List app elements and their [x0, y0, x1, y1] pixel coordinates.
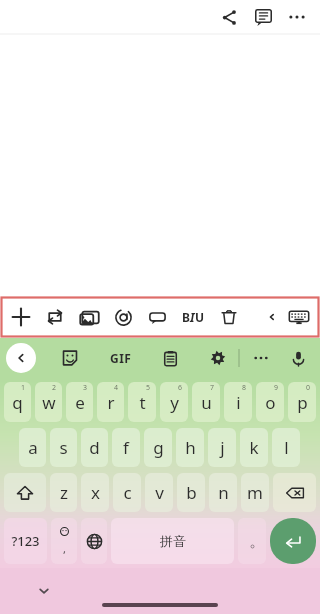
button[interactable]: t	[128, 382, 156, 422]
button[interactable]: v	[145, 473, 173, 512]
button[interactable]: Shift	[4, 473, 46, 512]
button[interactable]: q	[4, 382, 31, 422]
button[interactable]: Settings	[202, 342, 234, 374]
staticText: m	[247, 481, 263, 504]
button[interactable]: w	[35, 382, 62, 422]
button[interactable]: l	[272, 428, 300, 467]
button[interactable]: h	[176, 428, 204, 467]
button[interactable]: a	[19, 428, 46, 467]
button[interactable]: z	[50, 473, 77, 512]
staticText: 9	[274, 383, 279, 393]
staticText: i	[236, 391, 241, 414]
button[interactable]: d	[81, 428, 108, 467]
button[interactable]: Share	[212, 0, 246, 34]
button[interactable]: ?123	[4, 518, 47, 564]
button[interactable]: Previous	[262, 300, 282, 334]
button[interactable]: x	[81, 473, 109, 512]
button[interactable]: i	[224, 382, 252, 422]
staticText: y	[170, 391, 179, 414]
staticText: GIF	[110, 350, 132, 366]
staticText: I	[190, 309, 195, 325]
staticText: 8	[242, 383, 247, 393]
button[interactable]: Change language	[81, 518, 107, 564]
button[interactable]: Voice input	[282, 342, 314, 374]
staticText: c	[123, 481, 132, 504]
staticText: d	[89, 436, 100, 459]
button[interactable]: B	[174, 300, 212, 334]
button[interactable]: 拼音	[111, 518, 234, 564]
staticText: 5	[146, 383, 151, 393]
staticText: z	[60, 481, 68, 504]
button[interactable]: Mention	[106, 300, 140, 334]
staticText: o	[265, 391, 276, 414]
staticText: f	[123, 436, 129, 459]
staticText: s	[59, 436, 68, 459]
button[interactable]: y	[160, 382, 188, 422]
staticText: 3	[83, 383, 88, 393]
staticText: U	[195, 309, 205, 325]
staticText: l	[284, 436, 289, 459]
staticText: r	[107, 391, 115, 414]
staticText: b	[186, 481, 197, 504]
button[interactable]: s	[50, 428, 77, 467]
button[interactable]: GIF	[104, 342, 138, 374]
button[interactable]: More	[245, 342, 277, 374]
staticText: ,	[63, 541, 66, 556]
button[interactable]: Insert image	[72, 300, 106, 334]
staticText: p	[297, 391, 308, 414]
button[interactable]: p	[288, 382, 316, 422]
staticText: 6	[178, 383, 183, 393]
staticText: h	[185, 436, 196, 459]
button[interactable]: Period	[238, 518, 266, 564]
staticText: 4	[114, 383, 119, 393]
staticText: n	[218, 481, 229, 504]
staticText: w	[42, 391, 56, 414]
staticText: B	[182, 309, 190, 325]
staticText: a	[28, 436, 38, 459]
staticText: u	[201, 391, 212, 414]
button[interactable]: u	[192, 382, 220, 422]
button[interactable]: k	[240, 428, 268, 467]
button[interactable]: Hide keyboard	[282, 300, 316, 334]
staticText: g	[153, 436, 164, 459]
staticText: 1	[21, 383, 26, 393]
staticText: j	[220, 436, 225, 459]
button[interactable]: Comments	[246, 0, 280, 34]
button[interactable]: Comment	[140, 300, 174, 334]
staticText: x	[91, 481, 100, 504]
staticText: q	[12, 391, 23, 414]
button[interactable]: r	[97, 382, 124, 422]
button[interactable]: Stickers	[54, 342, 86, 374]
button[interactable]: Delete	[212, 300, 246, 334]
button[interactable]: Add	[4, 300, 38, 334]
button[interactable]: Repost	[38, 300, 72, 334]
button[interactable]: f	[112, 428, 140, 467]
button[interactable]: More options	[280, 0, 314, 34]
button[interactable]: j	[208, 428, 236, 467]
button[interactable]: Hide keyboard	[30, 577, 58, 605]
button[interactable]: b	[177, 473, 205, 512]
button[interactable]: e	[66, 382, 93, 422]
button[interactable]: o	[256, 382, 284, 422]
staticText: 拼音	[160, 533, 186, 549]
staticText: t	[139, 391, 146, 414]
button[interactable]: n	[209, 473, 237, 512]
staticText: 0	[306, 383, 311, 393]
staticText: v	[155, 481, 164, 504]
staticText: ?123	[11, 532, 40, 550]
staticText: 2	[52, 383, 57, 393]
button[interactable]: g	[144, 428, 172, 467]
button[interactable]: Back	[6, 343, 36, 373]
button[interactable]: Send	[270, 518, 316, 564]
button[interactable]: Emoji and comma	[51, 518, 77, 564]
button[interactable]: c	[113, 473, 141, 512]
staticText: e	[75, 391, 85, 414]
staticText: k	[249, 436, 259, 459]
button[interactable]: m	[241, 473, 269, 512]
button[interactable]: Clipboard	[154, 342, 186, 374]
staticText: 7	[210, 383, 215, 393]
button[interactable]: Backspace	[273, 473, 316, 512]
